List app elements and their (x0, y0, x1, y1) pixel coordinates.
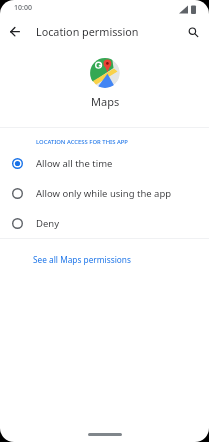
button[interactable] (5, 22, 25, 42)
staticText: 10:00 (14, 3, 32, 13)
button[interactable] (183, 22, 203, 42)
button[interactable]: See all Maps permissions (33, 254, 131, 265)
staticText: Deny (36, 217, 60, 230)
button[interactable]: Deny (0, 208, 209, 238)
staticText: See all Maps permissions (33, 254, 131, 265)
staticText: Allow only while using the app (36, 187, 172, 200)
button[interactable]: Allow only while using the app (0, 178, 209, 208)
staticText: LOCATION ACCESS FOR THIS APP (36, 138, 128, 146)
staticText: Allow all the time (36, 157, 113, 170)
button[interactable]: Allow all the time (0, 148, 209, 178)
staticText: Maps (91, 94, 120, 109)
staticText: Location permission (36, 24, 139, 39)
